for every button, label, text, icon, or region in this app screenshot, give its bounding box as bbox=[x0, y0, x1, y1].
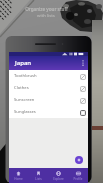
button[interactable]: More options bbox=[78, 58, 88, 68]
button[interactable]: Lists bbox=[28, 168, 48, 183]
button[interactable]: Toggle Sunglasses bbox=[77, 107, 88, 118]
button[interactable]: Home bbox=[9, 168, 28, 183]
staticText: Clothes bbox=[14, 85, 77, 91]
button[interactable]: Toggle Clothes bbox=[77, 83, 88, 94]
button[interactable]: Clothes bbox=[9, 82, 88, 94]
staticText: Home bbox=[14, 177, 23, 181]
staticText: Sunscreen bbox=[14, 97, 77, 103]
button[interactable]: Explore bbox=[48, 168, 68, 183]
button[interactable]: Sunscreen bbox=[9, 94, 88, 106]
button[interactable]: Toggle Sunscreen bbox=[77, 95, 88, 106]
button[interactable]: Profile bbox=[68, 168, 88, 183]
button[interactable]: Toothbrush bbox=[9, 70, 88, 82]
staticText: Toothbrush bbox=[14, 73, 77, 79]
staticText: Profile bbox=[73, 177, 83, 181]
staticText: Lists bbox=[35, 177, 42, 181]
staticText: Sunglasses bbox=[14, 109, 77, 115]
button[interactable]: Toggle Toothbrush bbox=[77, 71, 88, 82]
staticText: Japan bbox=[15, 59, 32, 67]
button[interactable]: Add item bbox=[75, 156, 83, 164]
button[interactable]: Sunglasses bbox=[9, 106, 88, 118]
staticText: Explore bbox=[53, 177, 64, 181]
staticText: Organize your stuff bbox=[25, 6, 68, 12]
staticText: with lists bbox=[37, 13, 55, 19]
